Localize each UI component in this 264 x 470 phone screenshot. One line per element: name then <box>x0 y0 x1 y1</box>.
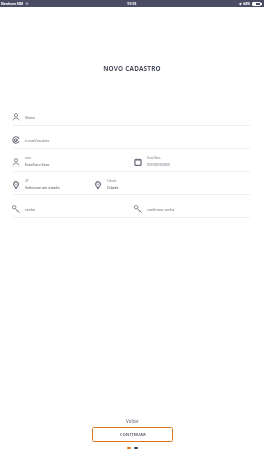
button[interactable]: Data Nasc. <box>132 149 264 171</box>
staticText: Escolha o Sexo <box>25 162 50 167</box>
staticText: Nenhum SIM <box>1 1 24 6</box>
button[interactable]: CONTINUAR <box>92 427 173 442</box>
staticText: Nome <box>25 115 36 120</box>
staticText: 44% <box>243 1 251 6</box>
staticText: UF <box>25 179 29 183</box>
staticText: NOVO CADASTRO <box>0 64 264 73</box>
staticText: e-mail/usuário <box>25 138 50 143</box>
button[interactable]: Cidade <box>92 172 264 194</box>
staticText: 11:13 <box>127 1 137 6</box>
button[interactable]: sexo <box>0 149 132 171</box>
staticText: senha <box>25 207 36 212</box>
button[interactable]: Nome <box>0 103 264 125</box>
staticText: Data Nasc. <box>147 156 162 160</box>
staticText: Cidade <box>107 179 117 183</box>
staticText: Voltar <box>126 418 139 424</box>
staticText: CONTINUAR <box>120 432 146 437</box>
staticText: sexo <box>25 156 32 160</box>
button[interactable]: confirmar senha <box>132 195 264 217</box>
staticText: DD/DD/DDDD <box>147 162 171 167</box>
staticText: confirmar senha <box>147 207 175 212</box>
button[interactable]: UF <box>0 172 92 194</box>
button[interactable]: senha <box>0 195 132 217</box>
staticText: Cidade <box>107 185 119 190</box>
button[interactable]: Voltar <box>0 412 264 425</box>
staticText: Selecione um estado <box>25 185 60 190</box>
button[interactable]: e-mail/usuário <box>0 126 264 148</box>
